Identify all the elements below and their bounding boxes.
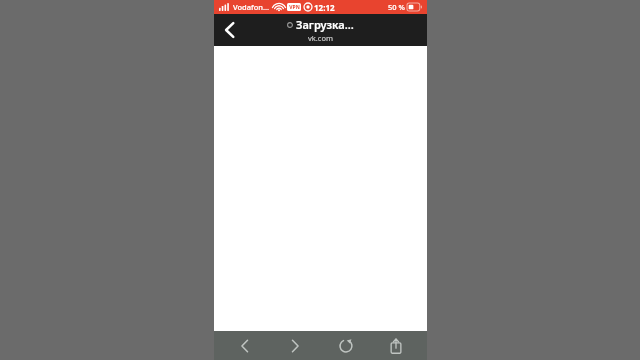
staticText: 12:12	[314, 2, 335, 13]
staticText: Vodafon...	[233, 2, 270, 12]
button[interactable]: Share	[376, 331, 416, 360]
staticText: Загрузка...	[296, 17, 354, 32]
button[interactable]: Forward	[275, 331, 315, 360]
staticText: vk.com	[308, 33, 333, 43]
button[interactable]: Reload	[326, 331, 366, 360]
staticText: 50 %	[388, 2, 405, 12]
button[interactable]: Back	[214, 14, 244, 46]
staticText: VPN	[289, 4, 300, 11]
button[interactable]: Загрузка...	[287, 17, 354, 43]
button[interactable]: Back	[225, 331, 265, 360]
